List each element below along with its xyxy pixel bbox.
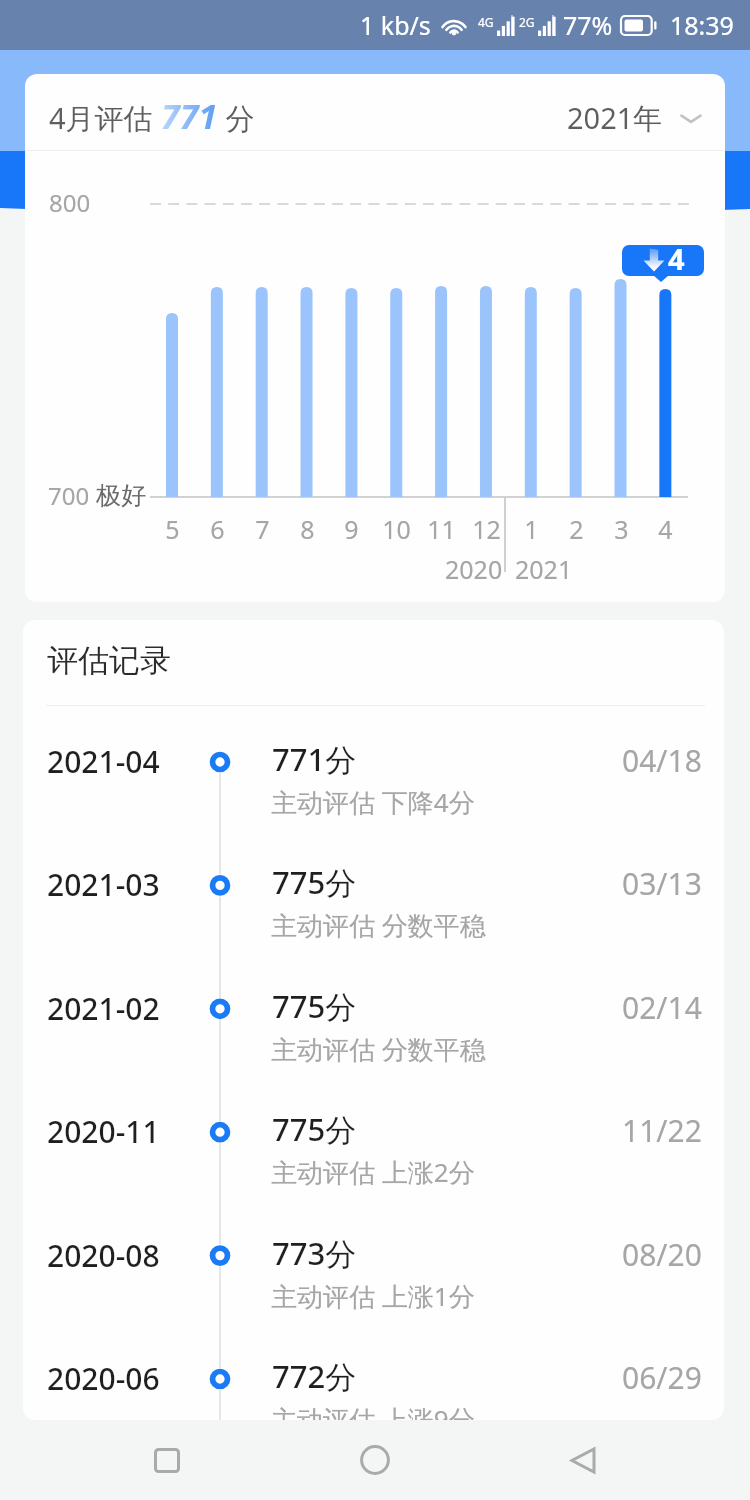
staticText: 2021-04 [47, 741, 160, 782]
button[interactable]: 2020-06 [23, 1331, 724, 1420]
staticText: 18:39 [670, 8, 734, 42]
button[interactable]: Home [325, 1420, 425, 1500]
staticText: 5 [165, 512, 180, 546]
staticText: 4 [658, 512, 673, 546]
staticText: 9 [344, 512, 359, 546]
button[interactable]: 2020-11 [23, 1084, 724, 1207]
staticText: 2 [569, 512, 584, 546]
staticText: 1 [524, 512, 539, 546]
staticText: 评估记录 [47, 641, 171, 680]
staticText: 7 [255, 512, 270, 546]
staticText: 4 [668, 239, 685, 276]
staticText: 771 [161, 93, 218, 139]
staticText: 775分 [272, 861, 357, 903]
staticText: 800 [49, 186, 91, 219]
staticText: 2021-02 [47, 988, 160, 1029]
staticText: 772分 [272, 1355, 357, 1397]
staticText: 分 [218, 98, 255, 138]
staticText: 2G [519, 14, 535, 30]
staticText: 04/18 [622, 740, 702, 781]
staticText: 主动评估 分数平稳 [271, 907, 486, 943]
staticText: 03/13 [622, 863, 702, 904]
staticText: 08/20 [622, 1234, 702, 1275]
staticText: 6 [210, 512, 225, 546]
staticText: 11 [427, 512, 456, 546]
staticText: 771分 [272, 738, 357, 780]
button[interactable]: 2021-02 [23, 961, 724, 1084]
button[interactable]: Back [533, 1420, 633, 1500]
staticText: 3 [614, 512, 629, 546]
staticText: 10 [382, 512, 411, 546]
staticText: 8 [300, 512, 315, 546]
button[interactable]: 2021-04 [23, 714, 724, 837]
button[interactable]: Recent apps [117, 1420, 217, 1500]
staticText: 2020-11 [47, 1111, 160, 1152]
staticText: 1 kb/s [360, 8, 431, 42]
staticText: 06/29 [622, 1357, 702, 1398]
button[interactable]: 2020-08 [23, 1208, 724, 1331]
staticText: 主动评估 上涨1分 [271, 1278, 475, 1314]
staticText: 2021 [515, 552, 573, 586]
staticText: 极好 [96, 480, 146, 511]
staticText: 775分 [272, 985, 357, 1027]
staticText: 主动评估 上涨9分 [271, 1401, 475, 1420]
staticText: 2021年 [567, 98, 663, 138]
staticText: 775分 [272, 1108, 357, 1150]
staticText: 77% [563, 8, 613, 42]
staticText: 12 [472, 512, 501, 546]
button[interactable]: 2021-03 [23, 837, 724, 960]
button[interactable]: 4月评估 [25, 74, 725, 151]
staticText: 2020-08 [47, 1235, 160, 1276]
staticText: 2020 [445, 552, 503, 586]
staticText: 2021-03 [47, 864, 160, 905]
staticText: 2020-06 [47, 1358, 160, 1399]
staticText: 主动评估 下降4分 [271, 784, 475, 820]
staticText: 11/22 [622, 1110, 702, 1151]
staticText: 773分 [272, 1232, 357, 1274]
staticText: 主动评估 上涨2分 [271, 1154, 475, 1190]
staticText: 4月评估 [49, 98, 161, 138]
staticText: 02/14 [622, 987, 702, 1028]
staticText: 主动评估 分数平稳 [271, 1031, 486, 1067]
staticText: 700 [48, 479, 96, 512]
staticText: 4G [478, 14, 494, 30]
